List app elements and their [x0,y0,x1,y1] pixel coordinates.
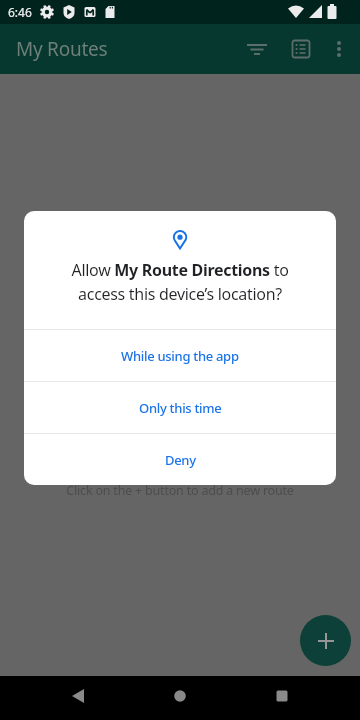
staticText: Click on the + button to add a new route [0,482,360,499]
staticText: 6:46 [8,4,32,20]
button[interactable] [279,24,323,74]
staticText: Only this time [139,399,222,417]
button[interactable] [0,676,120,720]
staticText: Allow My Route Directions to access this… [48,259,312,305]
staticText: Deny [165,451,196,469]
staticText: While using the app [121,347,239,365]
button[interactable] [240,676,360,720]
staticText: My Routes [16,36,108,62]
button[interactable] [120,676,240,720]
button[interactable] [323,24,355,74]
button[interactable] [300,615,351,666]
button[interactable]: Only this time [24,382,336,433]
button[interactable] [235,24,279,74]
button[interactable]: Deny [24,434,336,485]
button[interactable]: While using the app [24,330,336,381]
